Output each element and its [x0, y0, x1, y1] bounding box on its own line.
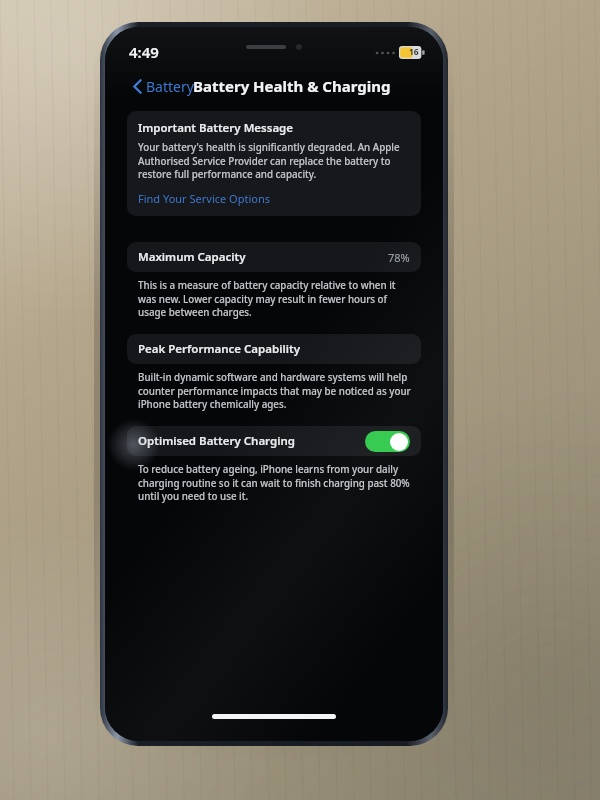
staticText: Peak Performance Capability	[138, 341, 410, 357]
staticText: 4:49	[129, 42, 159, 62]
staticText: Your battery's health is significantly d…	[138, 141, 410, 180]
staticText: Battery	[146, 77, 194, 96]
button[interactable]: Optimised Battery Charging toggle	[365, 431, 410, 452]
button[interactable]: Important Battery Message	[127, 111, 421, 216]
staticText: Optimised Battery Charging	[138, 433, 365, 449]
staticText: Maximum Capacity	[138, 249, 388, 265]
staticText: Built-in dynamic software and hardware s…	[138, 371, 413, 410]
button[interactable]: Find Your Service Options	[138, 191, 270, 206]
staticText: Battery Health & Charging	[193, 76, 391, 96]
button[interactable]: Maximum Capacity	[127, 242, 421, 272]
button[interactable]: Peak Performance Capability	[127, 334, 421, 364]
button[interactable]: Back	[127, 74, 200, 99]
other: Back	[133, 79, 142, 94]
button[interactable]: Optimised Battery Charging	[127, 426, 421, 456]
staticText: This is a measure of battery capacity re…	[138, 279, 413, 318]
staticText: Important Battery Message	[138, 120, 294, 136]
staticText: 78%	[388, 250, 410, 265]
staticText: To reduce battery ageing, iPhone learns …	[138, 463, 413, 502]
staticText: 16	[409, 46, 419, 58]
